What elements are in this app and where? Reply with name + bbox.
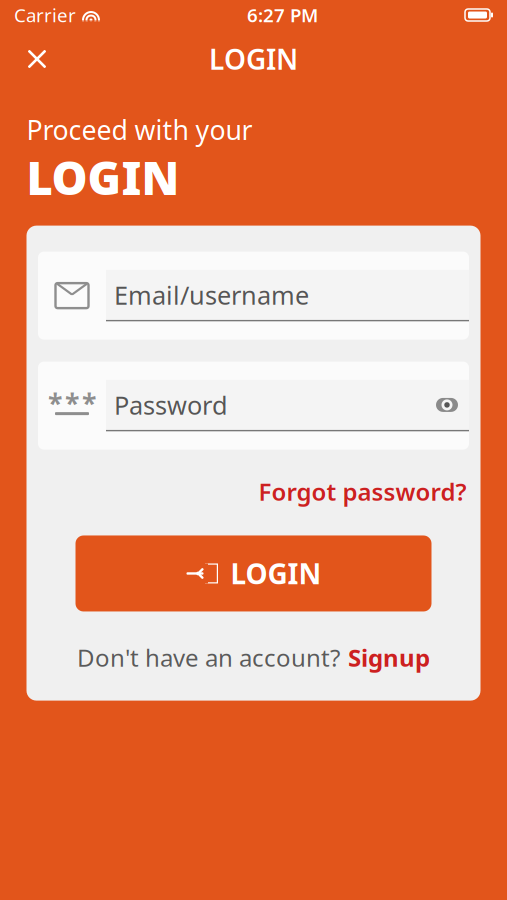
button[interactable]: Show password [435, 397, 469, 413]
staticText: Password [114, 388, 228, 422]
staticText: Proceed with your [26, 112, 252, 147]
staticText: Carrier [14, 3, 76, 27]
button[interactable]: LOGIN [75, 535, 431, 611]
staticText: 6:27 PM [247, 3, 318, 27]
staticText: LOGIN [26, 147, 179, 208]
staticText: LOGIN [230, 555, 321, 592]
staticText: Forgot password? [258, 476, 466, 507]
button[interactable]: Don't have an account? [77, 641, 430, 673]
button[interactable]: Forgot password? [258, 476, 466, 507]
staticText: LOGIN [209, 40, 298, 78]
staticText: Don't have an account? [77, 641, 340, 673]
button[interactable]: Close [12, 38, 62, 80]
staticText: Email/username [114, 278, 309, 312]
staticText: * [65, 385, 79, 421]
staticText: Signup [348, 641, 430, 673]
staticText: * [82, 385, 96, 421]
staticText: * [48, 385, 62, 421]
